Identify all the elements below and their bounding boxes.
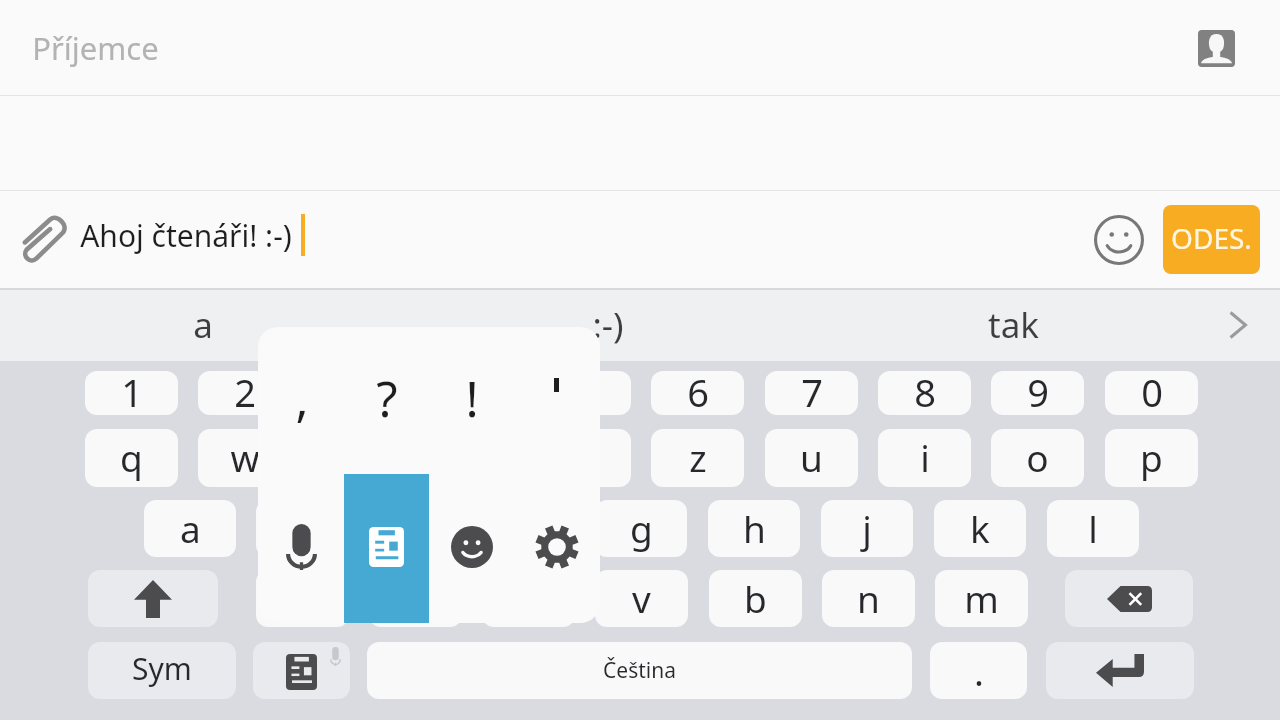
button[interactable]: ? — [344, 358, 429, 438]
staticText: 9 — [1027, 371, 1049, 410]
staticText: w — [230, 432, 260, 482]
staticText: h — [743, 503, 766, 553]
button[interactable]: Keyboard layout — [344, 507, 429, 587]
button[interactable]: Choose contact — [1186, 18, 1246, 78]
button[interactable]: Change keyboard — [253, 642, 350, 699]
button[interactable]: s — [256, 500, 348, 557]
button[interactable]: More suggestions — [1206, 288, 1270, 361]
staticText: u — [800, 432, 823, 482]
button[interactable]: a — [144, 500, 236, 557]
button[interactable]: j — [821, 500, 913, 557]
button[interactable]: ODES. — [1163, 205, 1260, 274]
button[interactable]: w — [198, 429, 291, 487]
staticText: :-) — [592, 301, 624, 349]
button[interactable]: x — [369, 570, 462, 627]
button[interactable]: 4 — [425, 371, 518, 415]
button[interactable]: Insert emoticon — [1091, 212, 1147, 268]
staticText: e — [348, 432, 369, 482]
staticText: 1 — [121, 371, 143, 410]
button[interactable]: h — [708, 500, 800, 557]
button[interactable]: 8 — [878, 371, 971, 415]
button[interactable]: m — [935, 570, 1028, 627]
staticText: p — [1140, 432, 1163, 482]
staticText: , — [295, 365, 309, 432]
button[interactable]: Shift — [88, 570, 218, 627]
button[interactable]: q — [85, 429, 178, 487]
button[interactable]: 6 — [651, 371, 744, 415]
button[interactable]: Čeština — [367, 642, 912, 699]
button[interactable]: 9 — [991, 371, 1084, 415]
button[interactable]: l — [1047, 500, 1139, 557]
staticText: ? — [376, 365, 398, 432]
button[interactable]: t — [538, 429, 631, 487]
staticText: n — [857, 573, 880, 623]
staticText: Sym — [132, 648, 192, 689]
staticText: Čeština — [603, 656, 676, 685]
staticText: a — [193, 301, 213, 349]
button[interactable]: Attach file — [12, 208, 76, 272]
staticText: 7 — [801, 371, 823, 410]
button[interactable]: Delete — [1065, 570, 1193, 627]
button[interactable]: o — [991, 429, 1084, 487]
button[interactable]: 1 — [85, 371, 178, 415]
staticText: b — [744, 573, 767, 623]
button[interactable]: p — [1105, 429, 1198, 487]
button[interactable]: z — [651, 429, 744, 487]
staticText: 8 — [914, 371, 936, 410]
staticText: ! — [465, 365, 479, 432]
button[interactable]: n — [822, 570, 915, 627]
staticText: g — [630, 503, 653, 553]
staticText: a — [180, 503, 201, 553]
button[interactable]: d — [369, 500, 461, 557]
button[interactable]: Emoji — [429, 507, 514, 587]
button[interactable]: 2 — [198, 371, 291, 415]
staticText: k — [970, 503, 990, 553]
button[interactable]: f — [482, 500, 574, 557]
staticText: q — [120, 432, 143, 482]
staticText: 4 — [461, 371, 483, 410]
button[interactable]: tak — [811, 288, 1216, 361]
button[interactable]: 3 — [312, 371, 405, 415]
button[interactable]: 7 — [765, 371, 858, 415]
button[interactable]: u — [765, 429, 858, 487]
button[interactable]: . — [930, 642, 1027, 699]
button[interactable]: 5 — [538, 371, 631, 415]
button[interactable]: e — [312, 429, 405, 487]
button[interactable]: ! — [429, 358, 514, 438]
button[interactable]: v — [595, 570, 688, 627]
button[interactable]: r — [425, 429, 518, 487]
button[interactable]: k — [934, 500, 1026, 557]
staticText: o — [1026, 432, 1049, 482]
staticText: i — [920, 432, 930, 482]
staticText: Ahoj čtenáři! :-) — [80, 215, 292, 256]
staticText: m — [964, 573, 999, 623]
button[interactable] — [514, 358, 599, 438]
staticText: . — [974, 646, 984, 696]
staticText: v — [632, 573, 651, 623]
button[interactable]: i — [878, 429, 971, 487]
button[interactable]: Settings — [514, 507, 599, 587]
staticText: l — [1088, 503, 1098, 553]
button[interactable]: :-) — [405, 288, 810, 361]
staticText: 2 — [234, 371, 256, 410]
staticText: z — [689, 432, 707, 482]
button[interactable]: g — [595, 500, 687, 557]
button[interactable]: b — [709, 570, 802, 627]
staticText: 0 — [1141, 371, 1163, 410]
button[interactable]: 0 — [1105, 371, 1198, 415]
staticText: ODES. — [1171, 219, 1252, 257]
staticText: 6 — [687, 371, 709, 410]
button[interactable]: , — [259, 358, 344, 438]
button[interactable]: Voice input — [259, 507, 344, 587]
button[interactable]: Enter — [1046, 642, 1194, 699]
button[interactable]: y — [256, 570, 349, 627]
button[interactable]: a — [0, 288, 405, 361]
button[interactable]: Sym — [88, 642, 236, 699]
